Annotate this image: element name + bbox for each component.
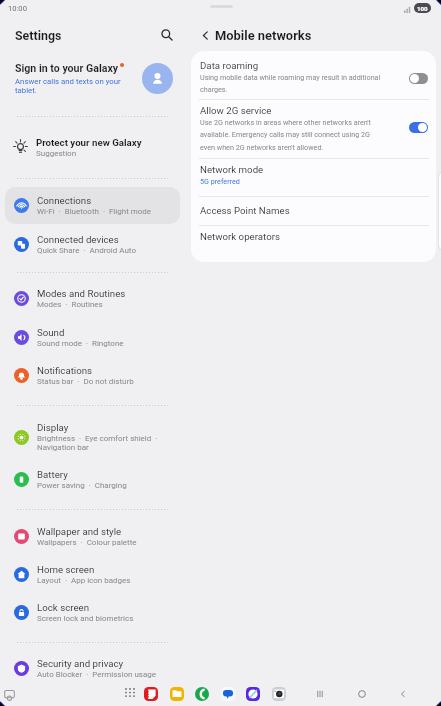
button[interactable]: Messages	[221, 687, 235, 701]
staticText: Screen lock and biometrics	[37, 614, 134, 623]
button[interactable]: Display	[5, 415, 180, 459]
button[interactable]: Internet	[246, 687, 260, 701]
button[interactable]: Home	[352, 684, 372, 704]
button[interactable]: Access Point Names	[191, 196, 436, 225]
staticText: Security and privacy	[37, 658, 124, 669]
staticText: Navigation bar	[37, 443, 89, 452]
button[interactable]: Connections	[5, 187, 180, 224]
staticText: Access Point Names	[200, 205, 290, 216]
staticText: Modes and Routines	[37, 288, 126, 299]
button[interactable]: Apps	[124, 686, 136, 698]
button[interactable]: Network operators	[191, 225, 436, 262]
staticText: Sound mode · Ringtone	[37, 339, 124, 348]
button[interactable]: Battery	[5, 461, 180, 498]
staticText: Answer calls and texts on your tablet.	[15, 77, 133, 95]
button[interactable]: Back	[196, 26, 214, 44]
staticText: Suggestion	[36, 149, 77, 158]
button[interactable]: Network mode	[191, 158, 436, 196]
staticText: Notifications	[37, 365, 93, 376]
button[interactable]: Security and privacy	[5, 650, 180, 687]
button[interactable]: Off	[409, 73, 428, 84]
staticText: Display	[37, 422, 69, 433]
button[interactable]: Protect your new Galaxy	[13, 132, 185, 163]
staticText: 100	[417, 5, 428, 12]
staticText: Brightness · Eye comfort shield ·	[37, 434, 158, 443]
staticText: Wallpaper and style	[37, 526, 122, 537]
staticText: Status bar · Do not disturb	[37, 377, 134, 386]
staticText: Battery	[37, 469, 68, 480]
button[interactable]: Search	[156, 24, 177, 45]
button[interactable]: Sound	[5, 319, 180, 356]
button[interactable]: My Files	[170, 687, 184, 701]
staticText: Power saving · Charging	[37, 481, 127, 490]
staticText: Connections	[37, 195, 92, 206]
button[interactable]: Back	[393, 684, 413, 704]
staticText: Sound	[37, 327, 65, 338]
staticText: Quick Share · Android Auto	[37, 246, 136, 255]
staticText: Network operators	[200, 231, 280, 242]
button[interactable]: Data roaming	[191, 51, 436, 99]
button[interactable]: On	[409, 122, 428, 133]
button[interactable]: Wallpaper and style	[5, 518, 180, 555]
staticText: Use 2G networks in areas where other net…	[200, 118, 383, 152]
staticText: 5G preferred	[200, 177, 240, 185]
button[interactable]: Home screen	[5, 556, 180, 593]
staticText: Auto Blocker · Permission usage	[37, 670, 157, 679]
staticText: Using mobile data while roaming may resu…	[200, 73, 383, 94]
staticText: Wallpapers · Colour palette	[37, 538, 137, 547]
staticText: Layout · App icon badges	[37, 576, 131, 585]
staticText: Sign in to your Galaxy	[15, 62, 119, 74]
staticText: Home screen	[37, 564, 95, 575]
button[interactable]: Phone	[195, 687, 209, 701]
button[interactable]: Notifications	[5, 357, 180, 394]
staticText: Protect your new Galaxy	[36, 137, 142, 148]
staticText: Connected devices	[37, 234, 119, 245]
button[interactable]: Profile	[142, 63, 173, 94]
staticText: Settings	[15, 28, 62, 43]
staticText: Lock screen	[37, 602, 90, 613]
button[interactable]: Camera	[272, 687, 286, 701]
staticText: Wi-Fi · Bluetooth · Flight mode	[37, 207, 152, 216]
staticText: 10:00	[8, 4, 27, 13]
staticText: Allow 2G service	[200, 105, 272, 116]
button[interactable]: Recents	[310, 684, 330, 704]
button[interactable]: Samsung Notes	[144, 687, 158, 701]
button[interactable]: Modes and Routines	[5, 280, 180, 317]
button[interactable]: Allow 2G service	[191, 99, 436, 158]
button[interactable]: Connected devices	[5, 226, 180, 263]
button[interactable]: Lock screen	[5, 594, 180, 631]
button[interactable]: Hide keyboard	[2, 687, 17, 702]
staticText: Modes · Routines	[37, 300, 103, 309]
staticText: Mobile networks	[215, 28, 312, 43]
staticText: Data roaming	[200, 60, 259, 71]
staticText: Network mode	[200, 164, 264, 175]
